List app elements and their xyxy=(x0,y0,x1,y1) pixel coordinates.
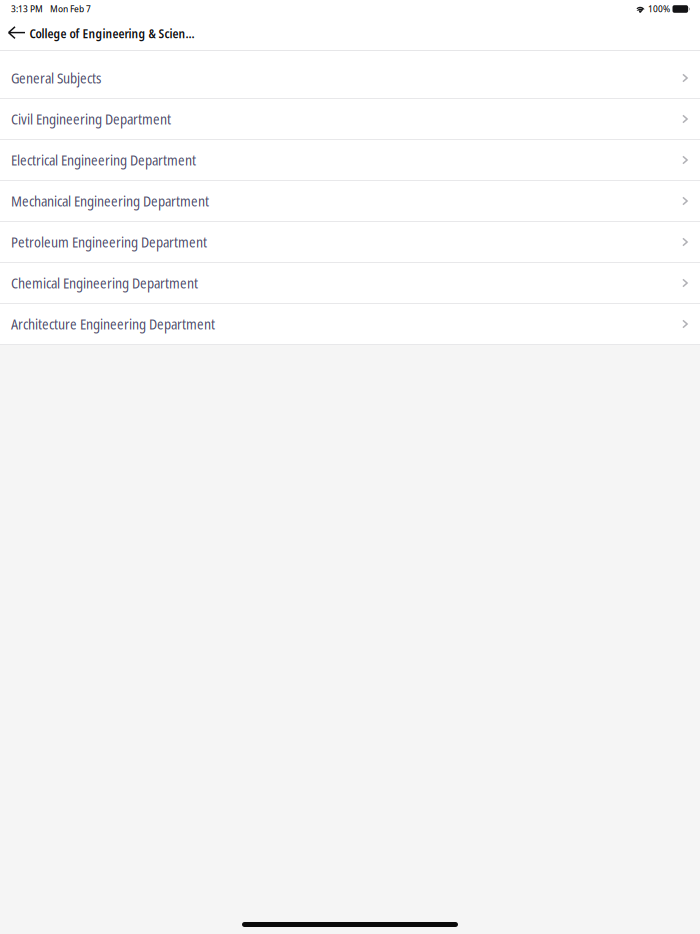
staticText: Architecture Engineering Department xyxy=(11,314,215,334)
staticText: Petroleum Engineering Department xyxy=(11,232,207,252)
staticText: Electrical Engineering Department xyxy=(11,150,196,170)
staticText: Mechanical Engineering Department xyxy=(11,191,209,211)
button[interactable]: Back xyxy=(0,20,29,48)
button[interactable]: Chemical Engineering Department xyxy=(0,263,700,304)
staticText: Civil Engineering Department xyxy=(11,109,171,129)
staticText: 3:13 PM xyxy=(11,3,43,15)
staticText: General Subjects xyxy=(11,68,101,88)
button[interactable]: Mechanical Engineering Department xyxy=(0,181,700,222)
button[interactable]: Architecture Engineering Department xyxy=(0,304,700,345)
staticText: Mon Feb 7 xyxy=(50,3,91,15)
staticText: 100% xyxy=(648,3,670,15)
staticText: Chemical Engineering Department xyxy=(11,273,198,293)
staticText: College of Engineering & Scien... xyxy=(29,25,194,42)
button[interactable]: Electrical Engineering Department xyxy=(0,140,700,181)
button[interactable]: General Subjects xyxy=(0,58,700,99)
button[interactable]: Petroleum Engineering Department xyxy=(0,222,700,263)
button[interactable]: Civil Engineering Department xyxy=(0,99,700,140)
